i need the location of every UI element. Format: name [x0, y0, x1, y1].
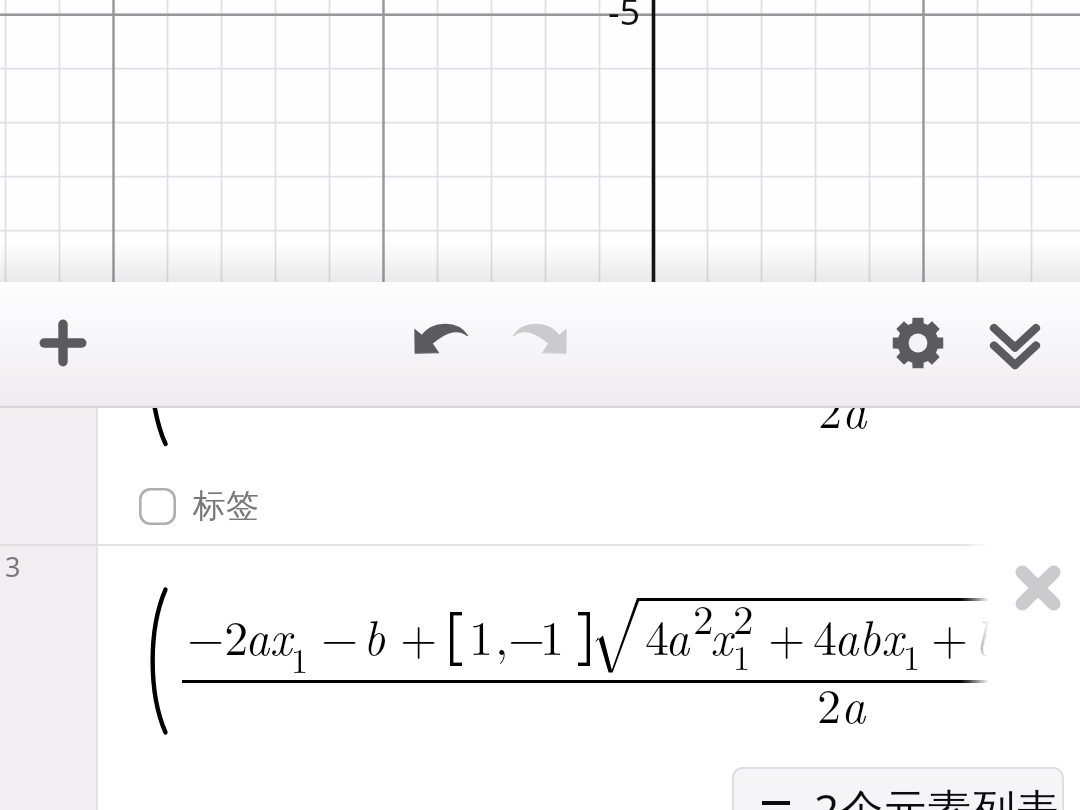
button[interactable]: Add expression — [15, 295, 111, 391]
staticText: 1 — [903, 632, 920, 680]
staticText: 2 — [693, 588, 714, 646]
staticText: + — [400, 601, 438, 669]
staticText: ax — [245, 601, 292, 669]
button[interactable]: Undo — [394, 291, 490, 387]
staticText: 1 — [540, 601, 565, 669]
button[interactable] — [98, 459, 1080, 553]
staticText: ab — [834, 601, 881, 669]
staticText: −2 — [187, 601, 249, 669]
button[interactable]: Collapse graph — [967, 298, 1063, 394]
staticText: a — [841, 669, 866, 737]
staticText: + — [931, 601, 969, 669]
button[interactable]: Delete expression — [1009, 559, 1067, 617]
staticText: b — [975, 601, 998, 669]
staticText: − — [321, 601, 359, 669]
staticText: 2 — [733, 588, 754, 646]
button[interactable]: Redo — [490, 291, 586, 387]
staticText: 2 — [817, 669, 842, 737]
staticText: − — [508, 601, 546, 669]
staticText: 2个元素列表 — [814, 779, 1060, 810]
staticText: , — [495, 601, 509, 669]
staticText: x — [881, 601, 904, 669]
staticText: a — [665, 601, 690, 669]
staticText: 1 — [733, 632, 750, 680]
staticText: 2 — [818, 374, 843, 442]
staticText: + — [768, 601, 806, 669]
button[interactable]: Settings — [870, 295, 966, 391]
staticText: a — [842, 374, 867, 442]
staticText: 标签 — [193, 485, 259, 527]
staticText: 1 — [469, 601, 494, 669]
staticText: -5 — [608, 0, 641, 36]
button[interactable]: 2个元素列表 — [732, 767, 1064, 810]
staticText: 1 — [291, 635, 308, 683]
staticText: 4 — [813, 601, 838, 669]
staticText: x — [710, 601, 733, 669]
staticText: 4 — [645, 601, 670, 669]
staticText: 3 — [5, 548, 21, 585]
staticText: b — [363, 601, 386, 669]
